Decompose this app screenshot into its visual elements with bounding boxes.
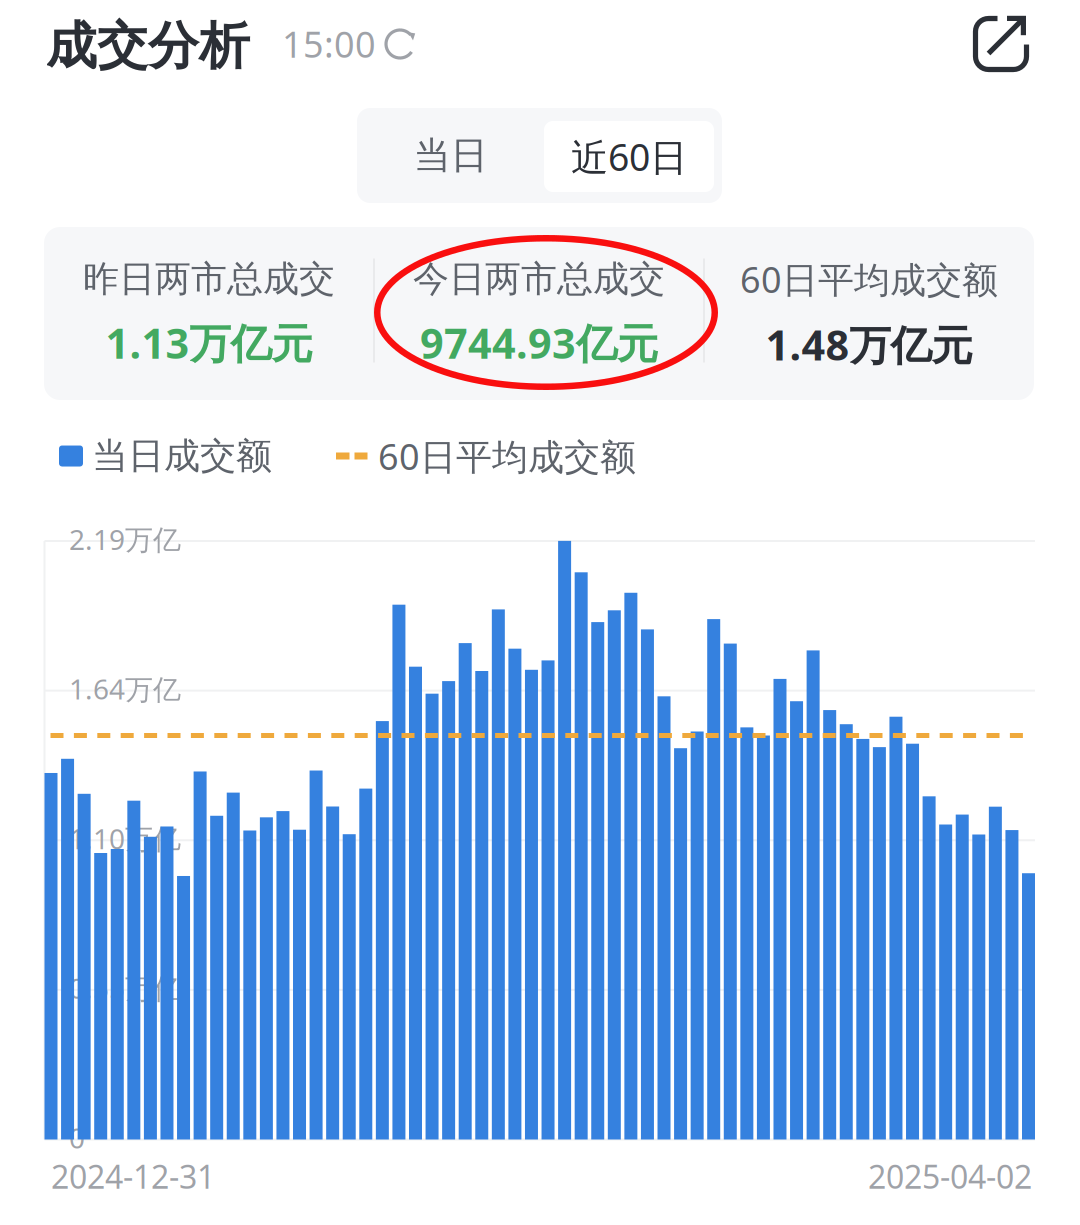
staticText: 近60日: [571, 132, 687, 181]
staticText: 成交分析: [46, 15, 250, 77]
staticText: 9744.93亿元: [420, 315, 658, 370]
staticText: 1.64万亿: [69, 670, 181, 707]
staticText: 昨日两市总成交: [83, 257, 335, 301]
staticText: 1.48万亿元: [765, 317, 972, 372]
staticText: 15:00: [282, 20, 376, 68]
button[interactable]: 分享: [968, 11, 1032, 75]
staticText: 60日平均成交额: [378, 432, 636, 480]
staticText: 2025-04-02: [868, 1155, 1032, 1197]
staticText: 0: [69, 1119, 85, 1156]
staticText: 2.19万亿: [69, 520, 181, 558]
staticText: 2024-12-31: [51, 1155, 215, 1197]
button[interactable]: 近60日: [544, 109, 722, 204]
staticText: 今日两市总成交: [413, 257, 665, 301]
staticText: 1.10万亿: [69, 820, 181, 857]
staticText: 1.13万亿元: [105, 315, 312, 370]
button[interactable]: 当日: [357, 108, 544, 203]
staticText: 60日平均成交额: [740, 255, 998, 303]
staticText: 当日成交额: [92, 434, 272, 478]
staticText: 当日: [413, 133, 487, 178]
staticText: 0.55万亿: [69, 969, 181, 1007]
